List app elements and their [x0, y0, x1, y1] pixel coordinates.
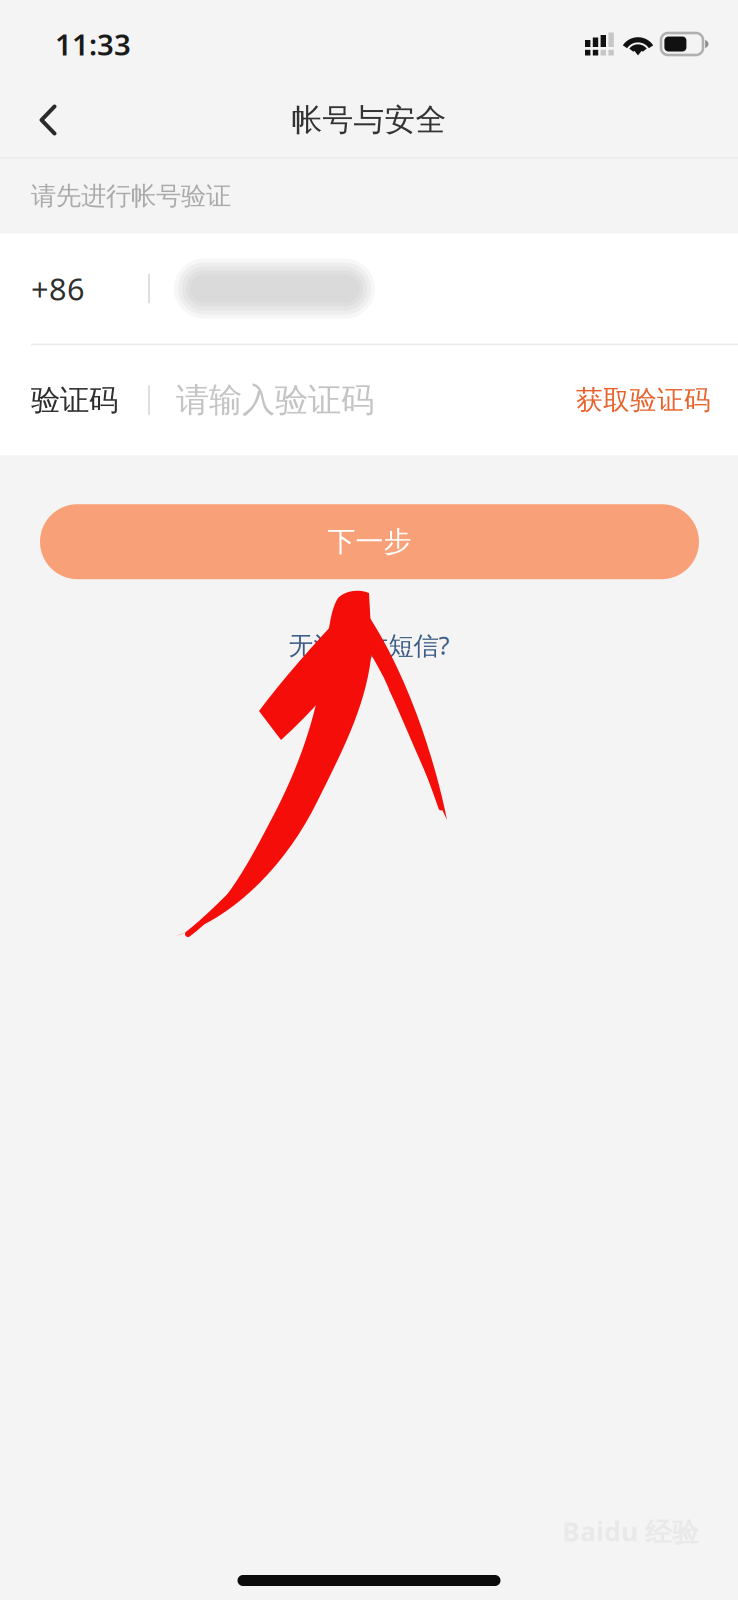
staticText: 下一步: [327, 524, 411, 559]
staticText: 请输入验证码: [176, 380, 374, 421]
staticText: 获取验证码: [576, 384, 711, 417]
button[interactable]: Back: [16, 83, 80, 157]
staticText: +86: [31, 268, 85, 309]
staticText: 11:33: [55, 24, 131, 63]
button[interactable]: 获取验证码: [562, 364, 711, 437]
button[interactable]: 无法接收短信?: [272, 617, 465, 673]
staticText: 请先进行帐号验证: [31, 180, 231, 212]
button[interactable]: 下一步: [40, 504, 699, 579]
staticText: 验证码: [31, 382, 118, 418]
staticText: Baidu 经验: [562, 1513, 699, 1549]
staticText: 帐号与安全: [291, 101, 446, 139]
staticText: 无法接收短信?: [288, 628, 449, 662]
